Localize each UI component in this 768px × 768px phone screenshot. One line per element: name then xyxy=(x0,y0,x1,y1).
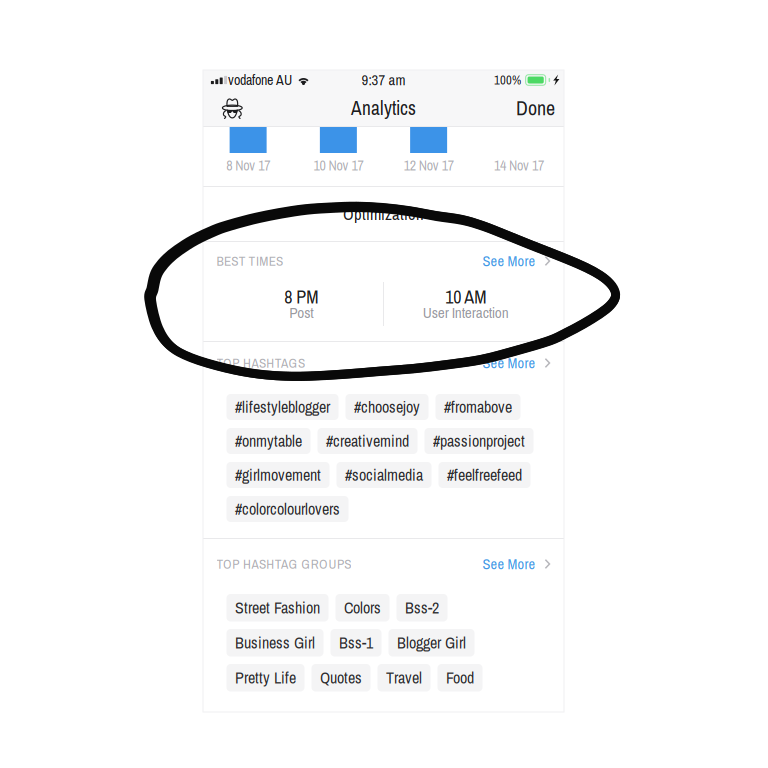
button[interactable]: #socialmedia xyxy=(336,462,431,488)
button[interactable]: #fromabove xyxy=(435,394,520,420)
staticText: Optimization xyxy=(343,203,424,225)
staticText: 10 AM xyxy=(445,285,486,309)
button[interactable]: #onmytable xyxy=(226,428,310,454)
staticText: Post xyxy=(289,302,313,323)
button[interactable]: #passionproject xyxy=(424,428,533,454)
staticText: Quotes xyxy=(320,667,362,689)
staticText: User Interaction xyxy=(423,302,509,323)
button[interactable]: TOP HASHTAG GROUPS xyxy=(203,549,564,579)
button[interactable]: Food xyxy=(437,664,482,691)
button[interactable]: Street Fashion xyxy=(226,594,328,621)
staticText: Business Girl xyxy=(235,632,315,654)
button[interactable]: #choosejoy xyxy=(345,394,428,420)
button[interactable]: #feelfreefeed xyxy=(438,462,530,488)
button[interactable]: #colorcolourlovers xyxy=(226,496,348,522)
staticText: TOP HASHTAG GROUPS xyxy=(216,555,351,573)
staticText: Bss-1 xyxy=(339,632,373,654)
button[interactable]: Quotes xyxy=(311,664,370,691)
staticText: #passionproject xyxy=(433,430,525,452)
staticText: 9:37 am xyxy=(361,70,405,90)
button[interactable]: Pretty Life xyxy=(226,664,304,691)
staticText: 100% xyxy=(494,71,521,89)
button[interactable]: Travel xyxy=(377,664,430,691)
button[interactable]: #creativemind xyxy=(317,428,417,454)
button[interactable]: Business Girl xyxy=(226,629,323,656)
staticText: #creativemind xyxy=(326,430,409,452)
staticText: 12 Nov 17 xyxy=(404,156,454,175)
button[interactable]: Incognito mode xyxy=(212,90,251,126)
button[interactable]: Bss-2 xyxy=(396,594,447,621)
staticText: Street Fashion xyxy=(235,597,320,619)
button[interactable]: Colors xyxy=(335,594,389,621)
button[interactable]: Bss-1 xyxy=(330,629,381,656)
staticText: #feelfreefeed xyxy=(447,464,522,486)
staticText: Pretty Life xyxy=(235,667,296,689)
staticText: See More xyxy=(482,554,535,574)
staticText: Colors xyxy=(344,597,381,619)
staticText: Done xyxy=(516,94,555,121)
button[interactable]: Blogger Girl xyxy=(388,629,474,656)
staticText: Analytics xyxy=(351,95,416,121)
staticText: #socialmedia xyxy=(345,464,423,486)
staticText: 10 Nov 17 xyxy=(313,156,363,175)
staticText: BEST TIMES xyxy=(216,252,283,270)
staticText: #lifestyleblogger xyxy=(235,396,330,418)
staticText: 8 PM xyxy=(284,285,318,309)
staticText: #onmytable xyxy=(235,430,302,452)
staticText: Travel xyxy=(386,667,422,689)
button[interactable]: #lifestyleblogger xyxy=(226,394,338,420)
staticText: 8 Nov 17 xyxy=(226,156,270,175)
staticText: vodafone AU xyxy=(228,71,292,89)
staticText: Food xyxy=(446,667,474,689)
staticText: See More xyxy=(482,353,535,373)
button[interactable]: #girlmovement xyxy=(226,462,329,488)
staticText: #choosejoy xyxy=(354,396,420,418)
staticText: Blogger Girl xyxy=(397,632,466,654)
staticText: #fromabove xyxy=(444,396,512,418)
button[interactable]: BEST TIMES xyxy=(203,246,564,276)
staticText: Bss-2 xyxy=(405,597,439,619)
staticText: #colorcolourlovers xyxy=(235,498,340,520)
staticText: 14 Nov 17 xyxy=(494,156,544,175)
staticText: See More xyxy=(482,251,535,271)
staticText: TOP HASHTAGS xyxy=(216,354,305,372)
button[interactable]: Done xyxy=(511,90,560,126)
button[interactable]: TOP HASHTAGS xyxy=(203,348,564,378)
staticText: #girlmovement xyxy=(235,464,321,486)
